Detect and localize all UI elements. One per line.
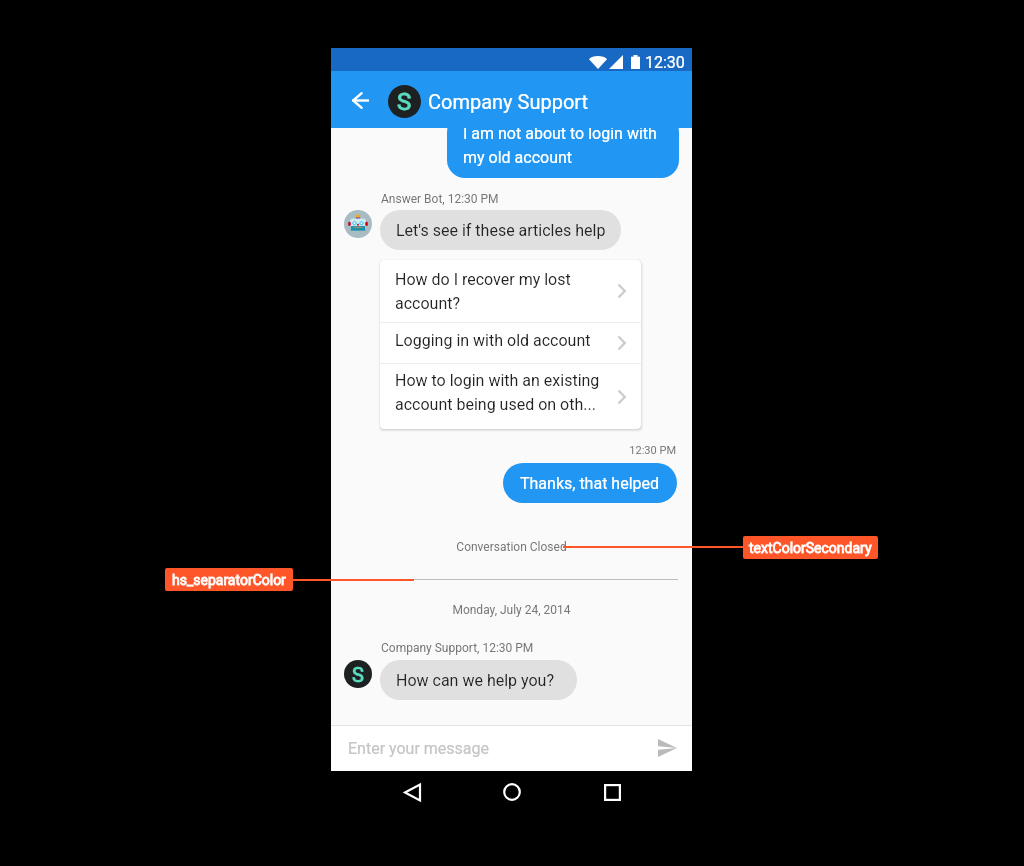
staticText: Company Support, 12:30 PM [381, 641, 534, 655]
button[interactable]: Recent apps [598, 778, 626, 806]
staticText: How to login with an existing account be… [395, 371, 606, 414]
button[interactable]: Send [647, 728, 687, 768]
staticText: hs_separatorColor [172, 572, 286, 588]
staticText: Let's see if these articles help [396, 221, 606, 240]
button[interactable]: Let's see if these articles help [380, 210, 621, 250]
staticText: S [397, 88, 412, 116]
staticText: How can we help you? [396, 671, 554, 690]
staticText: 12:30 PM [331, 444, 676, 457]
staticText: Conversation Closed [331, 540, 692, 554]
button[interactable]: textColorSecondary [743, 536, 878, 559]
button[interactable]: How to login with an existing account be… [380, 364, 641, 429]
button[interactable]: Logging in with old account [380, 323, 641, 363]
button[interactable]: Back [340, 85, 380, 115]
staticText: Company Support [428, 90, 589, 113]
button[interactable]: hs_separatorColor [165, 568, 293, 591]
staticText: Logging in with old account [395, 331, 606, 350]
button[interactable]: How can we help you? [380, 660, 577, 700]
staticText: 12:30 [645, 53, 685, 72]
staticText: How do I recover my lost account? [395, 270, 606, 313]
staticText: Enter your message [348, 739, 490, 758]
staticText: I am not about to login with my old acco… [463, 124, 669, 167]
button[interactable]: Thanks, that helped [503, 463, 677, 503]
staticText: Answer Bot, 12:30 PM [381, 192, 499, 206]
staticText: Thanks, that helped [520, 474, 660, 493]
staticText: textColorSecondary [749, 540, 872, 556]
button[interactable]: Back [398, 778, 426, 806]
staticText: S [352, 663, 364, 686]
staticText: Monday, July 24, 2014 [331, 603, 692, 617]
button[interactable]: Home [498, 778, 526, 806]
button[interactable]: How do I recover my lost account? [380, 260, 641, 322]
button[interactable]: I am not about to login with my old acco… [447, 114, 679, 178]
